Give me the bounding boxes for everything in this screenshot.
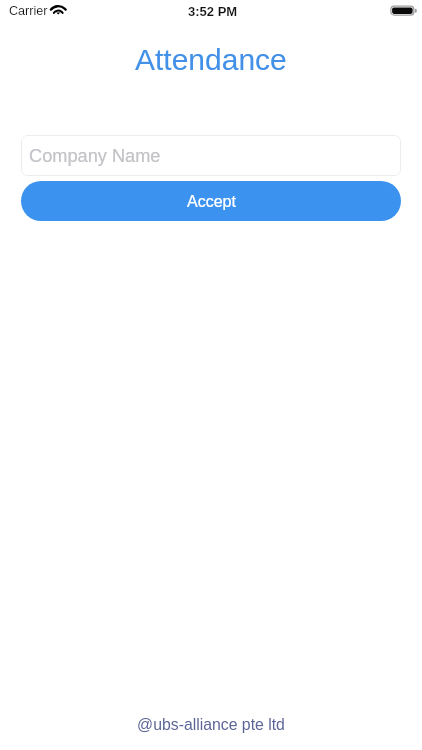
staticText: Carrier bbox=[9, 4, 48, 18]
staticText: 3:52 PM bbox=[188, 4, 238, 19]
staticText: Company Name bbox=[29, 146, 161, 166]
other: Battery full bbox=[390, 5, 417, 17]
button[interactable]: Accept bbox=[21, 181, 401, 221]
staticText: Accept bbox=[187, 193, 236, 211]
button[interactable]: Company Name bbox=[21, 135, 401, 176]
staticText: @ubs-alliance pte ltd bbox=[137, 716, 285, 734]
staticText: Attendance bbox=[135, 43, 287, 77]
